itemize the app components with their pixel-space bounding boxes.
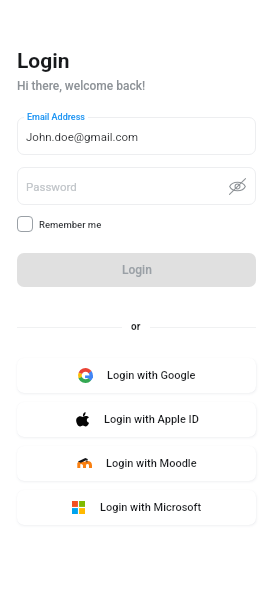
button[interactable]: John.doe@gmail.com <box>17 117 256 155</box>
staticText: Login with Google <box>107 369 196 382</box>
button[interactable]: Login with Google <box>17 358 256 393</box>
button[interactable]: Remember me <box>17 216 102 232</box>
button[interactable]: Login with Apple ID <box>17 402 256 437</box>
staticText: Hi there, welcome back! <box>17 79 146 93</box>
button[interactable]: Login with Moodle <box>17 446 256 481</box>
staticText: Login <box>122 263 152 277</box>
staticText: Email Address <box>27 112 85 123</box>
button[interactable]: Password <box>17 167 256 205</box>
staticText: Password <box>26 180 77 193</box>
staticText: Login with Microsoft <box>100 501 202 514</box>
button[interactable]: Login with Microsoft <box>17 490 256 525</box>
staticText: or <box>131 321 141 333</box>
staticText: Login <box>17 49 70 74</box>
button[interactable]: Show password <box>227 176 247 196</box>
button[interactable]: Login <box>17 253 256 287</box>
staticText: Login with Apple ID <box>104 413 199 426</box>
staticText: Remember me <box>39 219 102 230</box>
staticText: John.doe@gmail.com <box>26 130 139 143</box>
staticText: Login with Moodle <box>106 457 197 470</box>
